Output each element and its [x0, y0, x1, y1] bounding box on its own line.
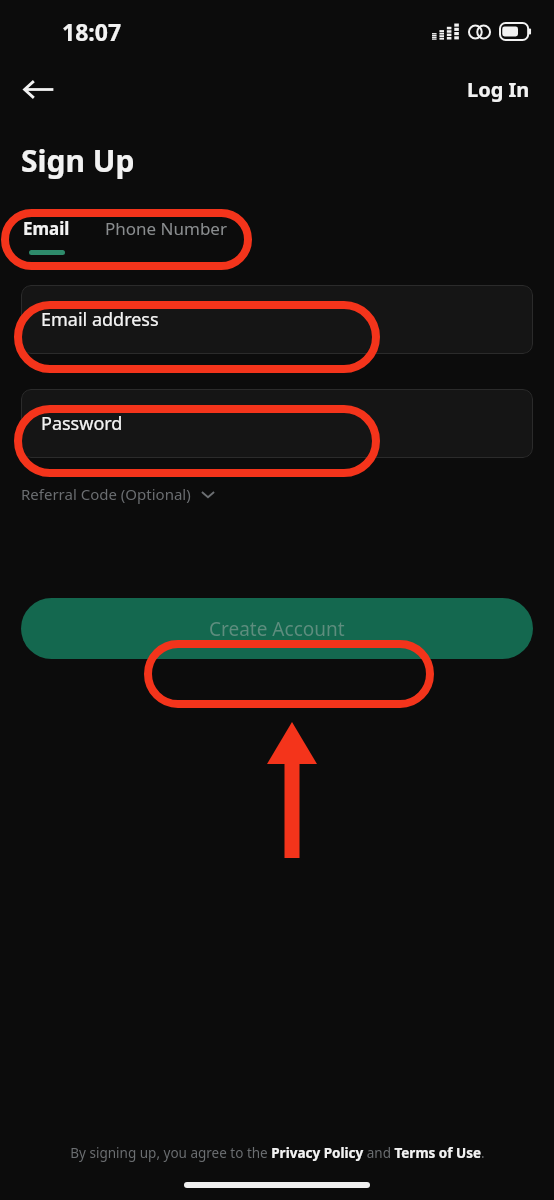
staticText: 18:07 [62, 16, 122, 47]
button[interactable]: By signing up, you agree to the Privacy … [70, 1144, 485, 1162]
button[interactable]: Password [21, 389, 533, 458]
button[interactable]: Create Account [21, 598, 533, 659]
staticText: Sign Up [21, 140, 135, 181]
button[interactable]: Referral Code (Optional) [21, 480, 216, 508]
button[interactable]: Log In [457, 68, 540, 111]
staticText: Log In [467, 76, 530, 103]
staticText: Phone Number [105, 217, 227, 240]
staticText: Email [23, 217, 70, 240]
button[interactable]: Email [21, 214, 72, 243]
staticText: Create Account [209, 616, 345, 642]
staticText: Referral Code (Optional) [21, 484, 191, 504]
staticText: Password [41, 411, 123, 436]
button[interactable]: Phone Number [103, 214, 229, 243]
button[interactable]: Email address [21, 285, 533, 354]
staticText: Email address [41, 307, 159, 332]
button[interactable]: Back [10, 61, 66, 117]
